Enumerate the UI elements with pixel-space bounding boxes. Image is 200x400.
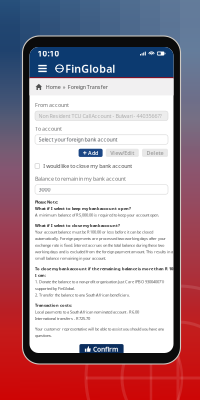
button[interactable]: View/Edit — [106, 149, 139, 157]
staticText: 1. Donate the balance to a non-profit or… — [35, 279, 164, 284]
staticText: 2. Transfer the balance to any South Afr… — [35, 292, 130, 297]
staticText: I can: — [35, 273, 46, 278]
staticText: supported by FinGlobal. — [35, 286, 75, 291]
button[interactable]: Add — [79, 149, 103, 157]
staticText: Select your foreign bank account — [38, 136, 117, 143]
staticText: 3000 — [38, 186, 50, 193]
staticText: From account — [35, 101, 69, 108]
staticText: 10:10 — [37, 48, 59, 59]
staticText: Balance to remain in my bank account — [35, 175, 126, 182]
staticText: questions. — [35, 333, 52, 338]
staticText: Delete — [146, 149, 163, 156]
staticText: A minimum balance of R 5,000.00 is requi… — [35, 212, 159, 218]
staticText: FinGlobal — [65, 61, 115, 76]
button[interactable]: Confirm — [79, 344, 124, 354]
staticText: Your customer representative will be abl… — [35, 326, 164, 331]
staticText: Transaction costs: — [35, 303, 72, 308]
button[interactable]: FinGlobal — [48, 61, 115, 76]
staticText: I would like to close my bank account — [43, 162, 132, 170]
staticText: working days and is excluded from the fo… — [35, 249, 173, 254]
button[interactable]: Menu — [36, 62, 48, 74]
staticText: exchange rate is fixed. Interest accrues… — [35, 242, 164, 248]
staticText: Confirm — [93, 345, 118, 353]
staticText: What if I select to close my bank accoun… — [35, 223, 120, 228]
button[interactable]: Delete — [142, 149, 168, 157]
staticText: What if I select to keep my bank account… — [35, 206, 131, 211]
staticText: Local payments to a South African nomina… — [35, 309, 139, 314]
staticText: View/Edit — [110, 149, 134, 156]
staticText: Add — [88, 149, 98, 156]
staticText: Your account balance must be R 100.00 or… — [35, 229, 153, 235]
staticText: Home » Foreign Transfer — [46, 83, 108, 90]
staticText: Non Resident TCU Call Account - Bulwari … — [38, 112, 161, 119]
button[interactable]: Home — [35, 84, 42, 90]
staticText: To close my bank account if the remainin… — [35, 266, 181, 271]
staticText: International transfers - R 725.70 — [35, 316, 90, 321]
staticText: Please Note: — [35, 199, 58, 204]
staticText: small balance remaining in your account. — [35, 256, 106, 261]
staticText: automatically. Foreign payments are proc… — [35, 236, 166, 241]
staticText: To account — [35, 125, 62, 132]
